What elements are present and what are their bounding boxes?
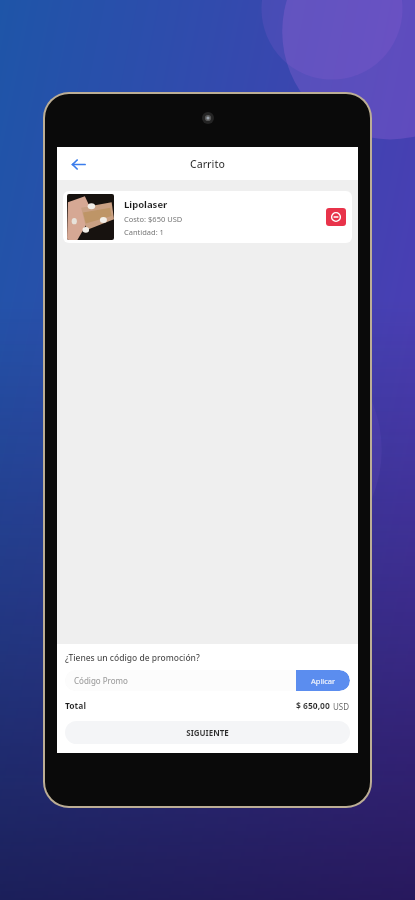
staticText: Cantidad: 1 (124, 227, 164, 237)
button[interactable]: Back (65, 151, 91, 177)
staticText: Total (65, 700, 86, 712)
staticText: Lipolaser (124, 198, 168, 211)
staticText: SIGUIENTE (186, 727, 229, 738)
staticText: Aplicar (311, 676, 336, 686)
staticText: Costo: $650 USD (124, 214, 183, 224)
button[interactable]: Lipolaser (63, 191, 352, 243)
button[interactable]: Aplicar (296, 670, 350, 691)
staticText: Carrito (190, 157, 225, 171)
staticText: Código Promo (74, 675, 128, 686)
button[interactable]: SIGUIENTE (65, 721, 350, 744)
button[interactable]: Eliminar (326, 208, 346, 226)
staticText: $ 650,00 (296, 700, 330, 712)
staticText: ¿Tienes un código de promoción? (65, 652, 200, 664)
staticText: USD (333, 701, 350, 712)
